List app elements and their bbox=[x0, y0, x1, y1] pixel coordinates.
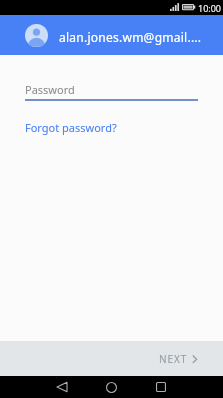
button[interactable]: alan.jones.wm@gmail.... bbox=[0, 15, 223, 55]
staticText: Password bbox=[25, 82, 75, 97]
staticText: 10:00 bbox=[198, 2, 222, 14]
button[interactable]: Forgot password? bbox=[25, 120, 117, 135]
button[interactable]: Password bbox=[25, 77, 198, 101]
staticText: Forgot password? bbox=[25, 120, 117, 135]
button[interactable]: Recent apps bbox=[146, 376, 176, 398]
staticText: alan.jones.wm@gmail.... bbox=[59, 29, 202, 45]
button[interactable]: Back bbox=[47, 376, 77, 398]
button[interactable]: NEXT bbox=[159, 352, 198, 366]
staticText: NEXT bbox=[159, 352, 188, 366]
button[interactable]: Home bbox=[96, 376, 126, 398]
